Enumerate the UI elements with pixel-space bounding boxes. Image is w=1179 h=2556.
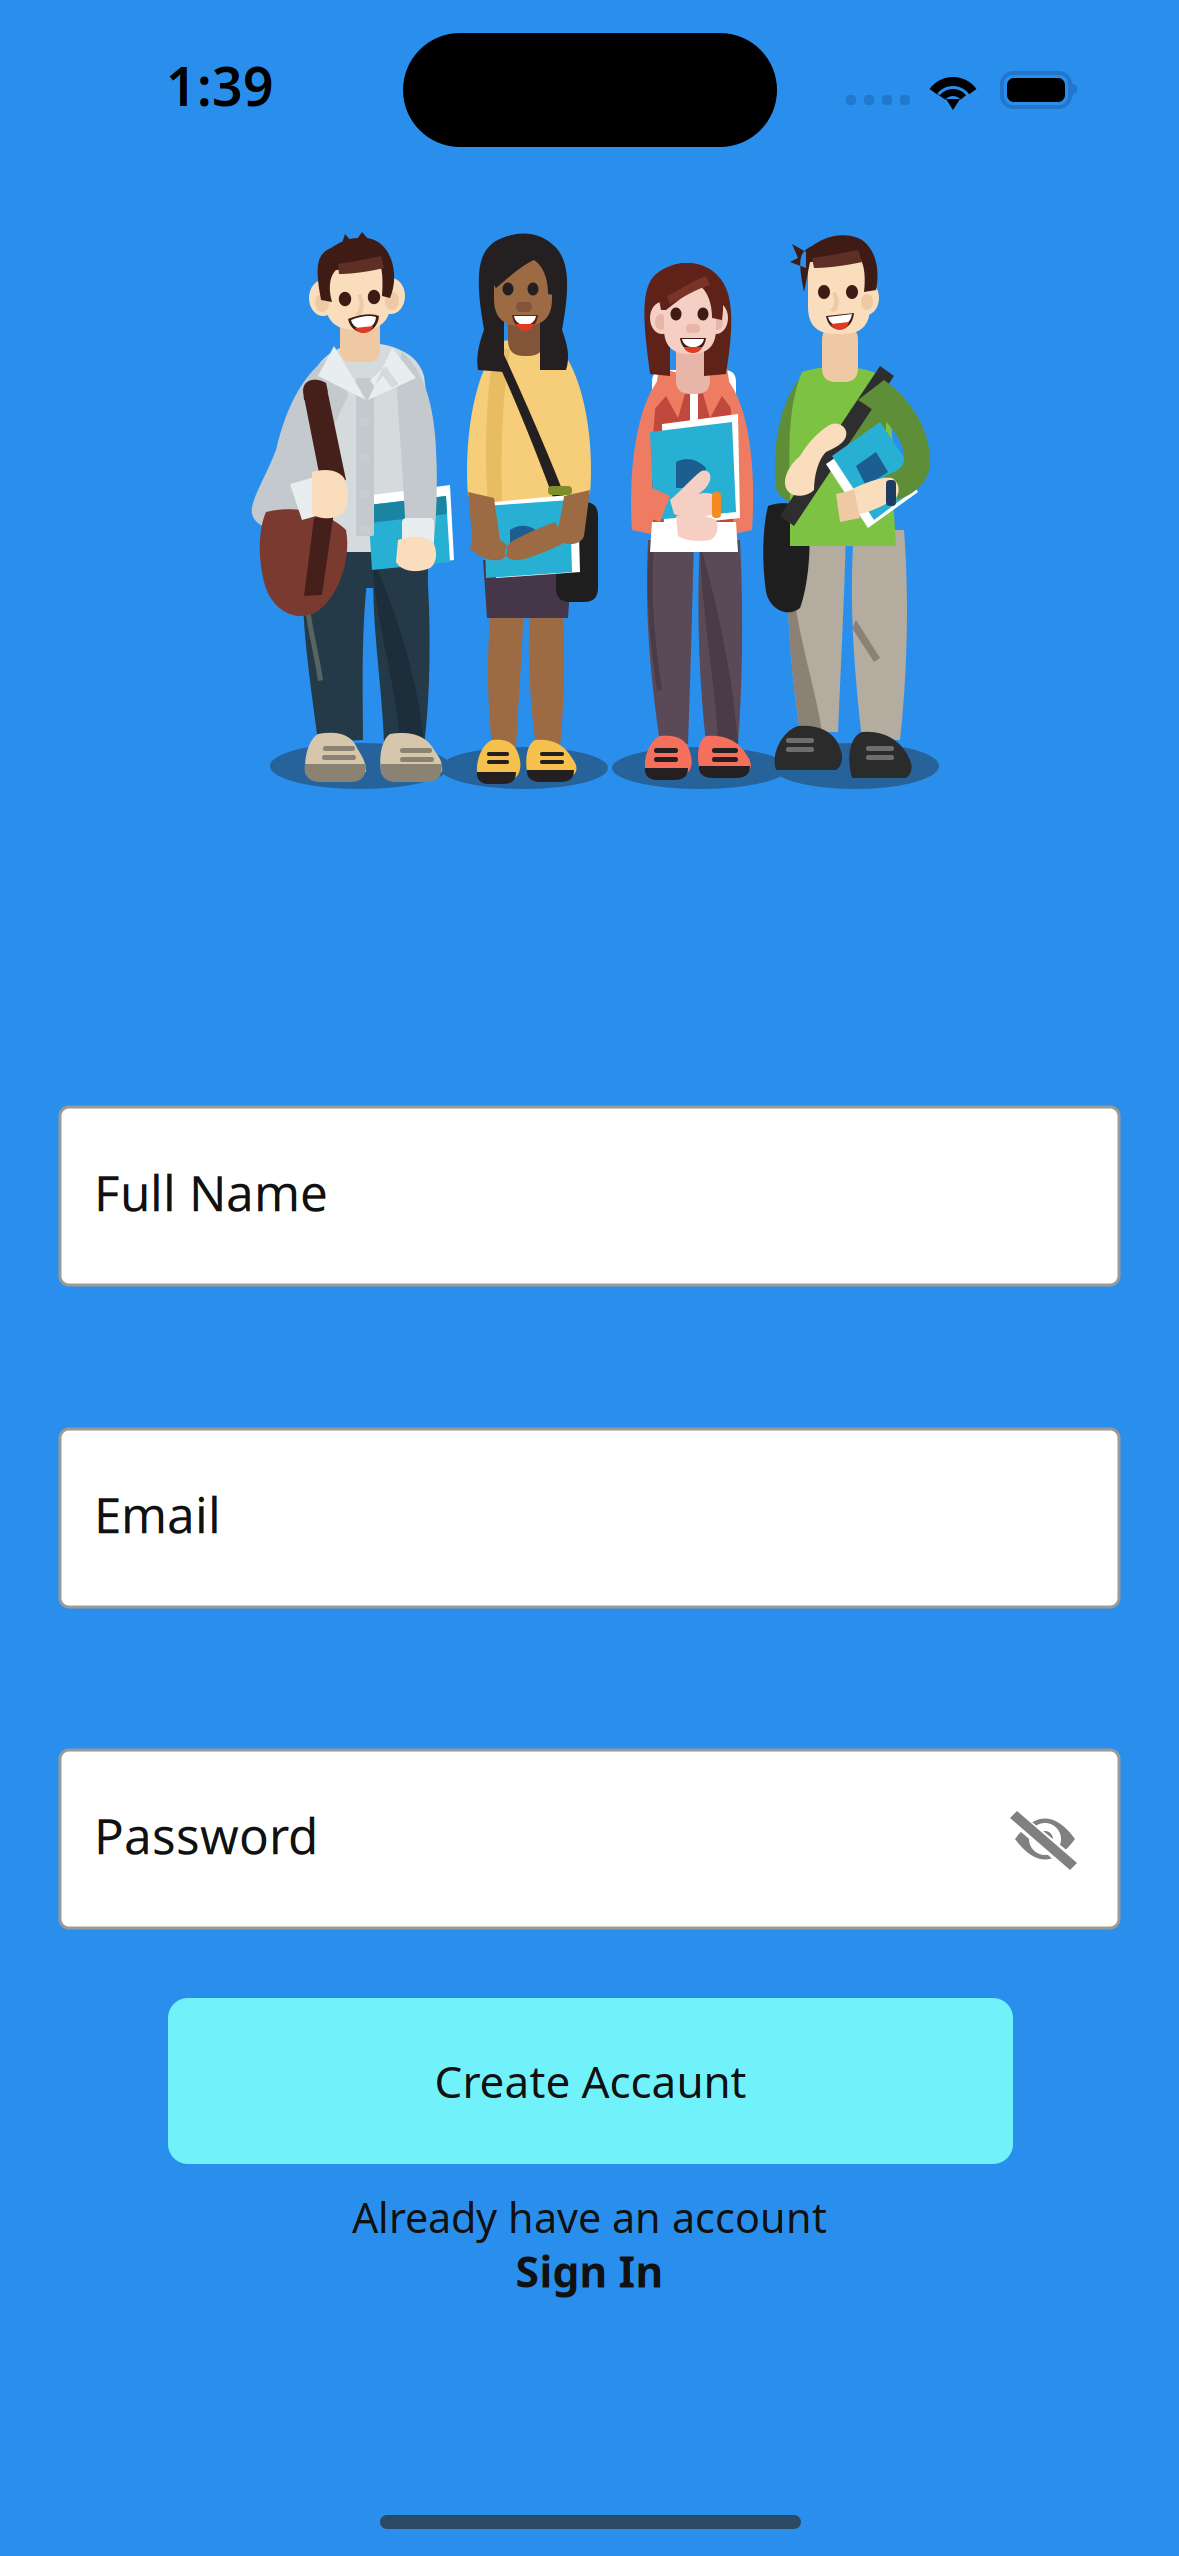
button[interactable]: Show password <box>985 1779 1105 1899</box>
staticText: 1:39 <box>166 50 274 121</box>
button[interactable]: Full Name <box>60 1107 1119 1285</box>
staticText: Create Accaunt <box>434 2052 746 2110</box>
staticText: Email <box>94 1481 221 1547</box>
button[interactable]: Create Accaunt <box>168 1998 1013 2164</box>
button[interactable]: Password <box>60 1750 1119 1928</box>
button[interactable]: Email <box>60 1429 1119 1607</box>
staticText: Full Name <box>94 1159 328 1225</box>
staticText: Already have an account <box>352 2190 827 2244</box>
button[interactable]: Already have an account <box>0 2190 1179 2298</box>
staticText: Password <box>94 1802 318 1868</box>
staticText: Sign In <box>515 2243 663 2299</box>
